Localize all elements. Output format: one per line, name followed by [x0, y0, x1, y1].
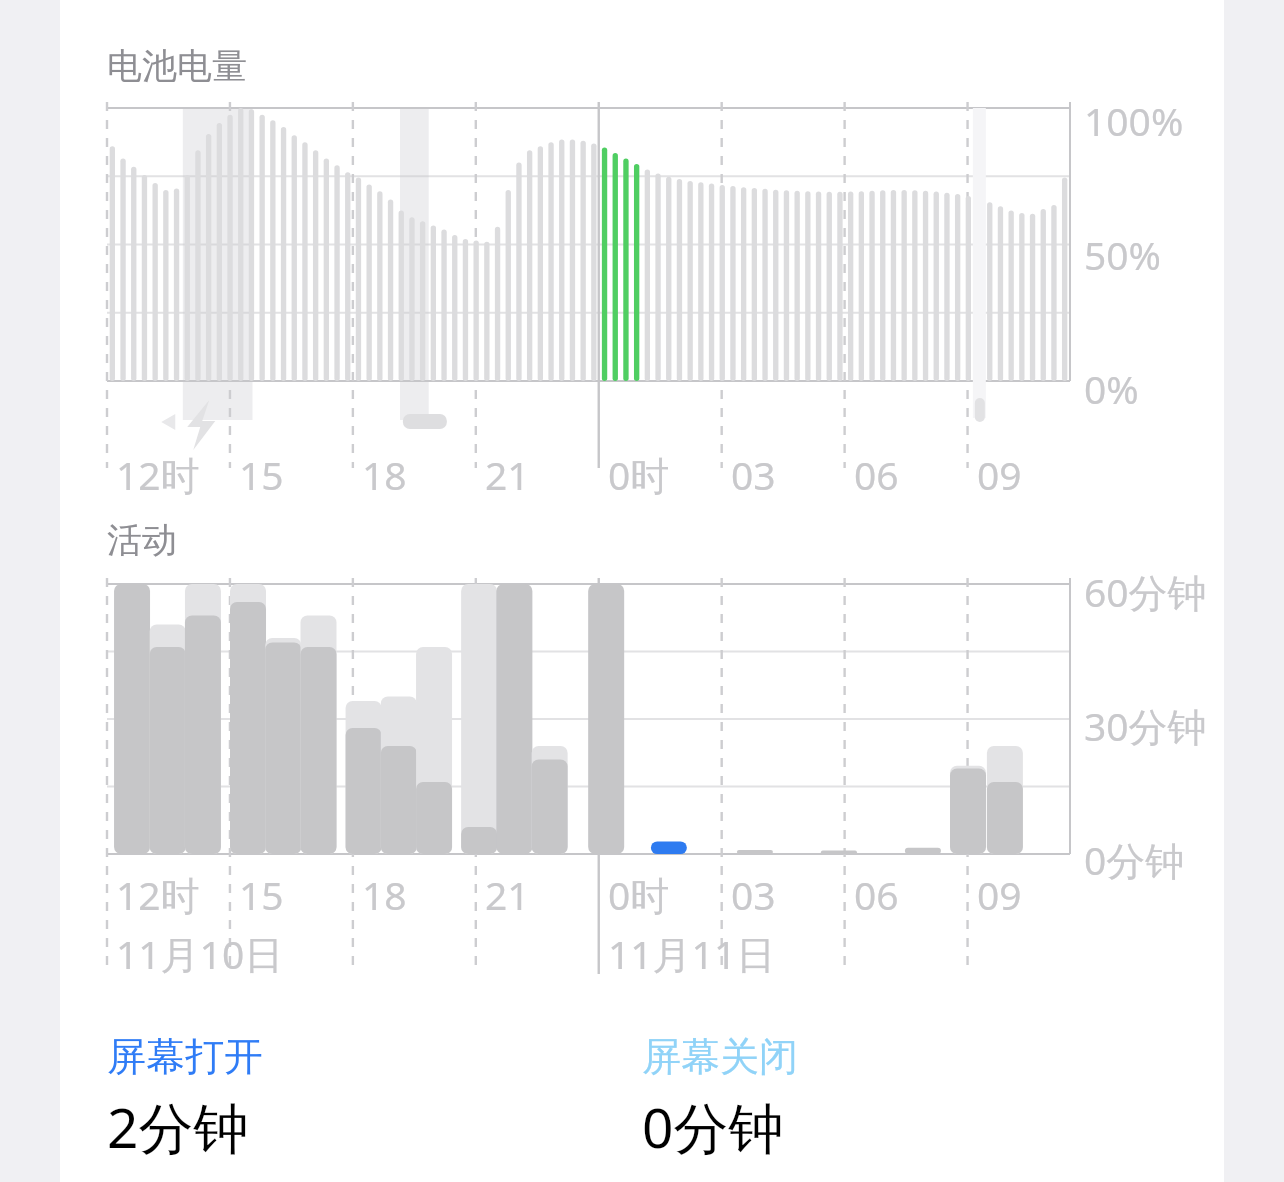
- staticText: 06: [854, 448, 899, 501]
- staticText: 21: [485, 448, 530, 501]
- staticText: 11月10日: [116, 927, 284, 980]
- staticText: 12时: [116, 868, 200, 921]
- staticText: 18: [362, 868, 407, 921]
- button[interactable]: 活动图表: [60, 574, 1224, 1004]
- staticText: 09: [977, 448, 1022, 501]
- staticText: 15: [239, 448, 284, 501]
- button[interactable]: 电池电量图表: [60, 100, 1224, 500]
- staticText: 0%: [1084, 362, 1139, 415]
- button[interactable]: 屏幕关闭: [642, 1032, 798, 1164]
- staticText: 50%: [1084, 228, 1162, 281]
- staticText: 2分钟: [107, 1089, 249, 1164]
- staticText: 屏幕关闭: [642, 1032, 798, 1081]
- staticText: 06: [854, 868, 899, 921]
- staticText: 11月11日: [608, 927, 776, 980]
- staticText: 60分钟: [1084, 565, 1207, 618]
- staticText: 电池电量: [107, 44, 247, 88]
- staticText: 0分钟: [642, 1089, 784, 1164]
- staticText: 03: [731, 448, 776, 501]
- button[interactable]: 屏幕打开: [107, 1032, 642, 1164]
- staticText: 03: [731, 868, 776, 921]
- staticText: 0时: [608, 868, 670, 921]
- staticText: 屏幕打开: [107, 1032, 263, 1081]
- staticText: 0分钟: [1084, 833, 1185, 886]
- staticText: 21: [485, 868, 530, 921]
- staticText: 100%: [1084, 94, 1184, 147]
- staticText: 18: [362, 448, 407, 501]
- staticText: 30分钟: [1084, 699, 1207, 752]
- staticText: 15: [239, 868, 284, 921]
- staticText: 09: [977, 868, 1022, 921]
- staticText: 12时: [116, 448, 200, 501]
- staticText: 活动: [107, 518, 177, 562]
- staticText: 0时: [608, 448, 670, 501]
